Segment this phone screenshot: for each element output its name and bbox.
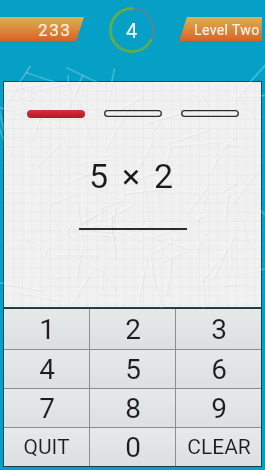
button[interactable]: 0 [90,428,175,466]
staticText: 0 [125,431,141,464]
button[interactable]: 8 [90,389,175,427]
staticText: CLEAR [187,435,251,460]
button[interactable]: 6 [176,350,261,388]
button[interactable]: 4 [4,350,89,388]
button[interactable]: 233 [0,17,84,41]
staticText: 8 [125,392,141,425]
staticText: 4 [126,19,138,42]
staticText: 9 [211,392,227,425]
staticText: 4 [39,353,55,386]
staticText: 7 [39,392,55,425]
staticText: 5 × 2 [89,156,176,196]
button[interactable]: 1 [4,309,89,349]
button[interactable]: QUIT [4,428,89,466]
button[interactable]: CLEAR [176,428,261,466]
staticText: 3 [211,313,227,346]
staticText: 2 [125,313,141,346]
staticText: 5 [125,353,141,386]
staticText: 233 [38,20,72,40]
staticText: 6 [211,353,227,386]
staticText: QUIT [23,435,70,460]
button[interactable]: 7 [4,389,89,427]
staticText: 1 [39,313,55,346]
button[interactable]: 2 [90,309,175,349]
button[interactable]: 9 [176,389,261,427]
button[interactable]: 3 [176,309,261,349]
button[interactable]: Level Two [179,17,262,41]
staticText: Level Two [194,22,260,38]
button[interactable]: 5 [90,350,175,388]
